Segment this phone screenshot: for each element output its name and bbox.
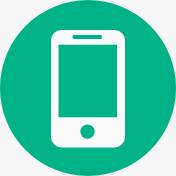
button[interactable]: Phone / mobile device: [0, 0, 176, 176]
